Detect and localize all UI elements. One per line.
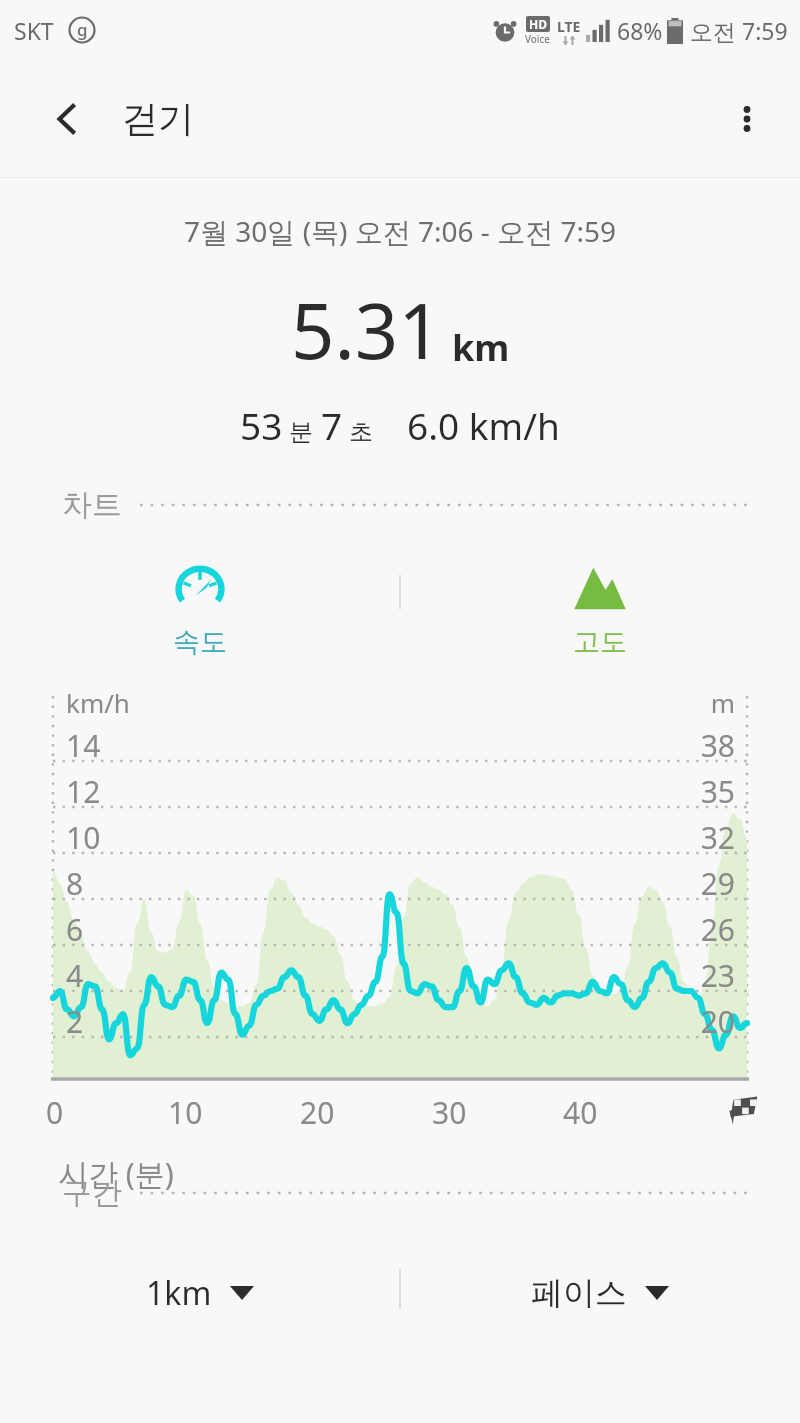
staticText: g [77, 18, 88, 41]
staticText: 12 [66, 771, 101, 812]
button[interactable]: 1km [0, 1261, 400, 1325]
staticText: 2 [66, 1001, 84, 1042]
staticText: 7 [321, 400, 343, 450]
staticText: 차트 [62, 486, 122, 524]
staticText: 고도 [573, 625, 627, 659]
staticText: 8 [66, 863, 84, 904]
button[interactable]: 고도 [400, 558, 800, 662]
staticText: 6.0 km/h [407, 400, 560, 450]
staticText: 구간 [62, 1174, 122, 1212]
staticText: 걷기 [122, 96, 194, 141]
staticText: SKT [14, 15, 54, 46]
staticText: km [452, 323, 510, 372]
staticText: 20 [700, 1001, 735, 1042]
staticText: 초 [349, 417, 373, 447]
staticText: 20 [300, 1092, 335, 1133]
staticText: 29 [700, 863, 735, 904]
staticText: 23 [700, 955, 735, 996]
button[interactable]: 더보기 [718, 90, 776, 148]
staticText: Voice [525, 32, 550, 46]
button[interactable]: 뒤로 [38, 90, 96, 148]
staticText: 분 [289, 417, 313, 447]
staticText: 35 [700, 771, 735, 812]
staticText: 38 [700, 725, 735, 766]
staticText: 오전 7:59 [690, 15, 788, 46]
staticText: 시간 (분) [58, 1153, 174, 1194]
staticText: 53 [240, 400, 283, 450]
staticText: 7월 30일 (목) 오전 7:06 - 오전 7:59 [184, 212, 616, 250]
staticText: m [710, 685, 735, 720]
button[interactable]: 페이스 [400, 1261, 800, 1325]
staticText: 0 [46, 1092, 64, 1133]
staticText: 30 [432, 1092, 467, 1133]
button[interactable]: 속도 [0, 558, 400, 662]
staticText: km/h [66, 685, 130, 720]
staticText: HD [529, 16, 547, 32]
staticText: 68% [617, 15, 663, 46]
staticText: 10 [66, 817, 101, 858]
staticText: 4 [66, 955, 84, 996]
staticText: 속도 [173, 625, 227, 659]
staticText: 페이스 [531, 1273, 627, 1313]
staticText: 1km [146, 1271, 212, 1315]
staticText: LTE [557, 17, 581, 36]
staticText: 6 [66, 909, 84, 950]
staticText: 26 [700, 909, 735, 950]
staticText: 5.31 [291, 278, 442, 382]
staticText: 32 [700, 817, 735, 858]
staticText: 10 [168, 1092, 203, 1133]
staticText: 40 [563, 1092, 598, 1133]
staticText: 14 [66, 725, 101, 766]
